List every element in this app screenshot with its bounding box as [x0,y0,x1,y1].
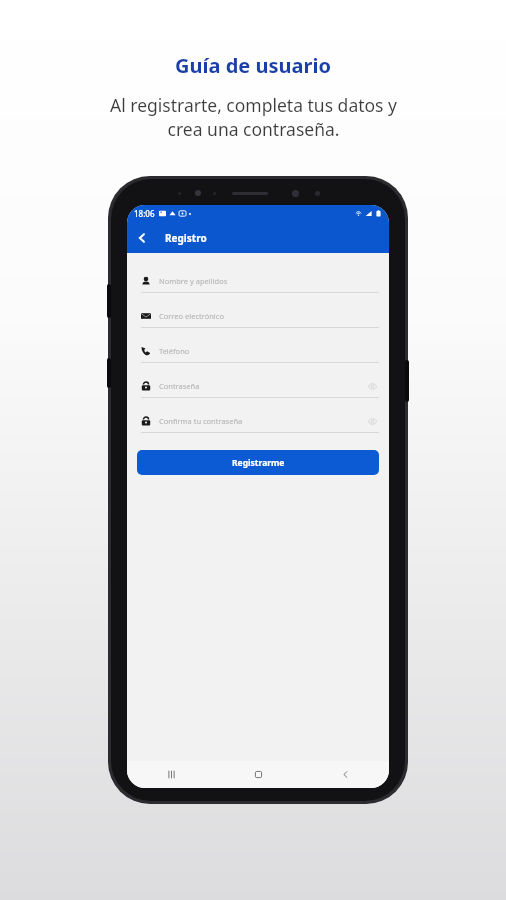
button[interactable]: Registrarme [137,450,379,475]
button[interactable]: Correo electrónico [137,305,379,328]
staticText: Registrarme [232,457,285,469]
button[interactable]: Recents [127,761,215,788]
button[interactable]: Teléfono [137,340,379,363]
staticText: Confirma tu contraseña [159,416,243,426]
button[interactable]: Contraseña [137,375,379,398]
button[interactable]: Confirma tu contraseña [137,410,379,433]
button[interactable]: Nombre y apellidos [137,270,379,293]
button[interactable]: Show password [365,379,379,393]
staticText: Registro [165,231,207,245]
staticText: Al registrarte, completa tus datos y cre… [110,93,397,141]
button[interactable]: Back [127,223,157,253]
staticText: 18:06 [134,208,155,219]
staticText: Correo electrónico [159,311,224,321]
button[interactable]: Home [215,761,302,788]
staticText: Contraseña [159,381,200,391]
button[interactable]: Back [302,761,389,788]
staticText: Nombre y apellidos [159,276,228,286]
staticText: Teléfono [159,346,190,356]
staticText: Guía de usuario [175,52,331,79]
button[interactable]: Show password [365,414,379,428]
